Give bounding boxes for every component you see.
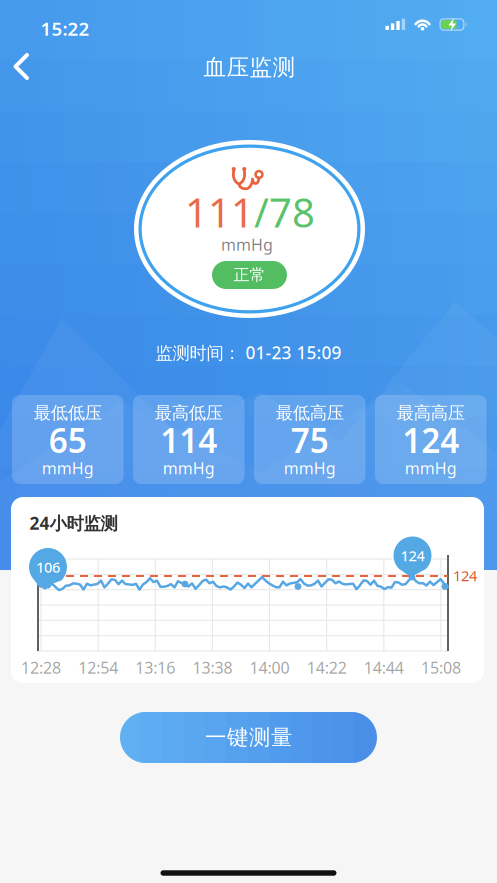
- staticText: 15:08: [421, 657, 461, 678]
- staticText: 最低高压: [276, 402, 344, 424]
- staticText: 12:28: [21, 657, 61, 678]
- staticText: 65: [49, 418, 87, 462]
- staticText: 106: [36, 557, 60, 577]
- staticText: 13:16: [135, 657, 175, 678]
- staticText: 124: [453, 566, 477, 585]
- button[interactable]: 一 键 测 量: [120, 712, 377, 763]
- staticText: 血压监测: [203, 54, 295, 81]
- button[interactable]: Back: [7, 50, 40, 83]
- staticText: mmHg: [42, 457, 94, 479]
- staticText: 最高低压: [155, 402, 223, 424]
- staticText: 12:54: [78, 657, 118, 678]
- staticText: mmHg: [163, 457, 215, 479]
- staticText: 24小时监测: [29, 511, 117, 534]
- staticText: 监测时间： 01-23 15:09: [155, 341, 341, 364]
- staticText: mmHg: [284, 457, 336, 479]
- staticText: 13:38: [192, 657, 232, 678]
- staticText: 14:00: [250, 657, 290, 678]
- staticText: 15:22: [40, 16, 89, 41]
- staticText: 最低低压: [34, 402, 102, 424]
- staticText: 一 键 测 量: [205, 724, 292, 751]
- staticText: 124: [402, 418, 459, 462]
- staticText: 114: [160, 418, 217, 462]
- staticText: mmHg: [221, 234, 273, 255]
- staticText: /78: [254, 185, 315, 238]
- staticText: 75: [291, 418, 329, 462]
- staticText: 14:22: [307, 657, 347, 678]
- staticText: 最高高压: [397, 402, 465, 424]
- staticText: mmHg: [405, 457, 457, 479]
- staticText: 124: [400, 546, 424, 565]
- staticText: 14:44: [364, 657, 404, 678]
- staticText: 111: [185, 185, 254, 238]
- staticText: 正常: [233, 265, 265, 285]
